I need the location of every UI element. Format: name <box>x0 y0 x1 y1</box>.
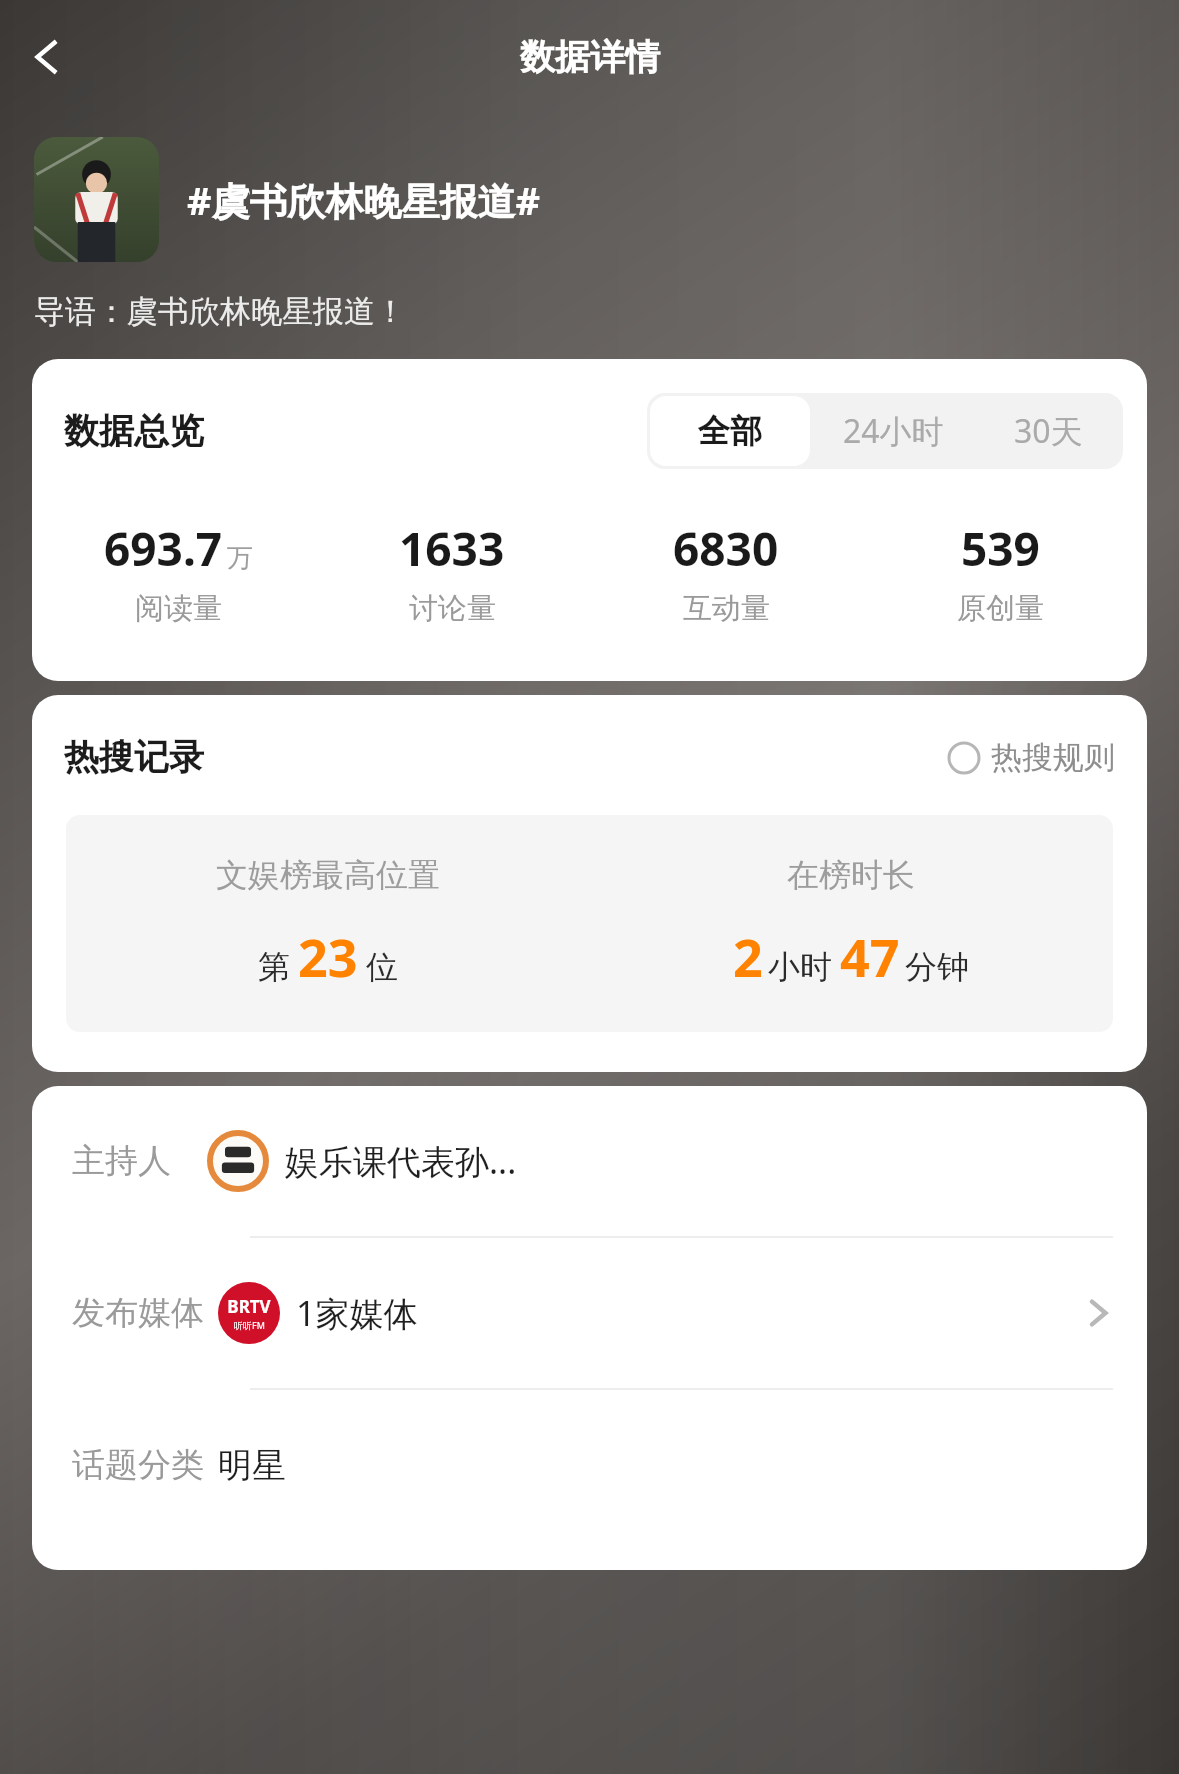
button[interactable]: 539 <box>863 517 1137 627</box>
staticText: 小时 <box>768 947 832 987</box>
button[interactable]: 主持人 <box>32 1086 1147 1236</box>
staticText: 位 <box>366 947 398 987</box>
staticText: 明星 <box>218 1444 286 1487</box>
button[interactable]: 30天 <box>973 393 1123 469</box>
button[interactable]: 24小时 <box>813 393 973 469</box>
staticText: 互动量 <box>683 590 770 627</box>
staticText: 数据总览 <box>64 409 204 453</box>
staticText: 热搜记录 <box>64 735 204 779</box>
staticText: 万 <box>227 542 253 575</box>
button[interactable]: 热搜规则 <box>947 738 1115 777</box>
staticText: 文娱榜最高位置 <box>216 855 440 895</box>
button[interactable] <box>34 137 159 262</box>
staticText: 全部 <box>698 411 762 451</box>
staticText: 发布媒体 <box>72 1292 204 1334</box>
button[interactable]: 6830 <box>589 517 863 627</box>
staticText: #虞书欣林晚星报道# <box>187 174 541 226</box>
staticText: 导语：虞书欣林晚星报道！ <box>34 292 406 331</box>
staticText: 第 <box>258 947 290 987</box>
staticText: 2 <box>733 921 763 992</box>
staticText: 693.7 <box>104 517 223 580</box>
staticText: 539 <box>961 517 1040 580</box>
staticText: 听听FM <box>234 1319 265 1331</box>
staticText: 热搜规则 <box>991 738 1115 777</box>
staticText: 6830 <box>673 517 779 580</box>
button[interactable]: Back <box>10 20 84 94</box>
staticText: BRTV <box>227 1295 271 1318</box>
staticText: 阅读量 <box>135 590 222 627</box>
staticText: 47 <box>840 921 900 992</box>
staticText: 数据详情 <box>520 35 660 79</box>
staticText: 1家媒体 <box>296 1290 418 1336</box>
staticText: 分钟 <box>905 947 969 987</box>
button[interactable]: 693.7 <box>42 517 315 627</box>
staticText: 1633 <box>399 517 505 580</box>
button[interactable]: 发布媒体 <box>32 1238 1147 1388</box>
staticText: 在榜时长 <box>787 855 915 895</box>
staticText: 娱乐课代表孙... <box>285 1138 517 1184</box>
button[interactable]: 1633 <box>315 517 589 627</box>
button[interactable]: 话题分类 <box>32 1390 1147 1540</box>
button[interactable]: 全部 <box>650 396 810 466</box>
staticText: 24小时 <box>843 409 944 453</box>
staticText: 30天 <box>1014 409 1083 453</box>
staticText: 主持人 <box>72 1140 171 1182</box>
staticText: 话题分类 <box>72 1444 204 1486</box>
staticText: 讨论量 <box>409 590 496 627</box>
staticText: 原创量 <box>957 590 1044 627</box>
staticText: 23 <box>298 921 358 992</box>
